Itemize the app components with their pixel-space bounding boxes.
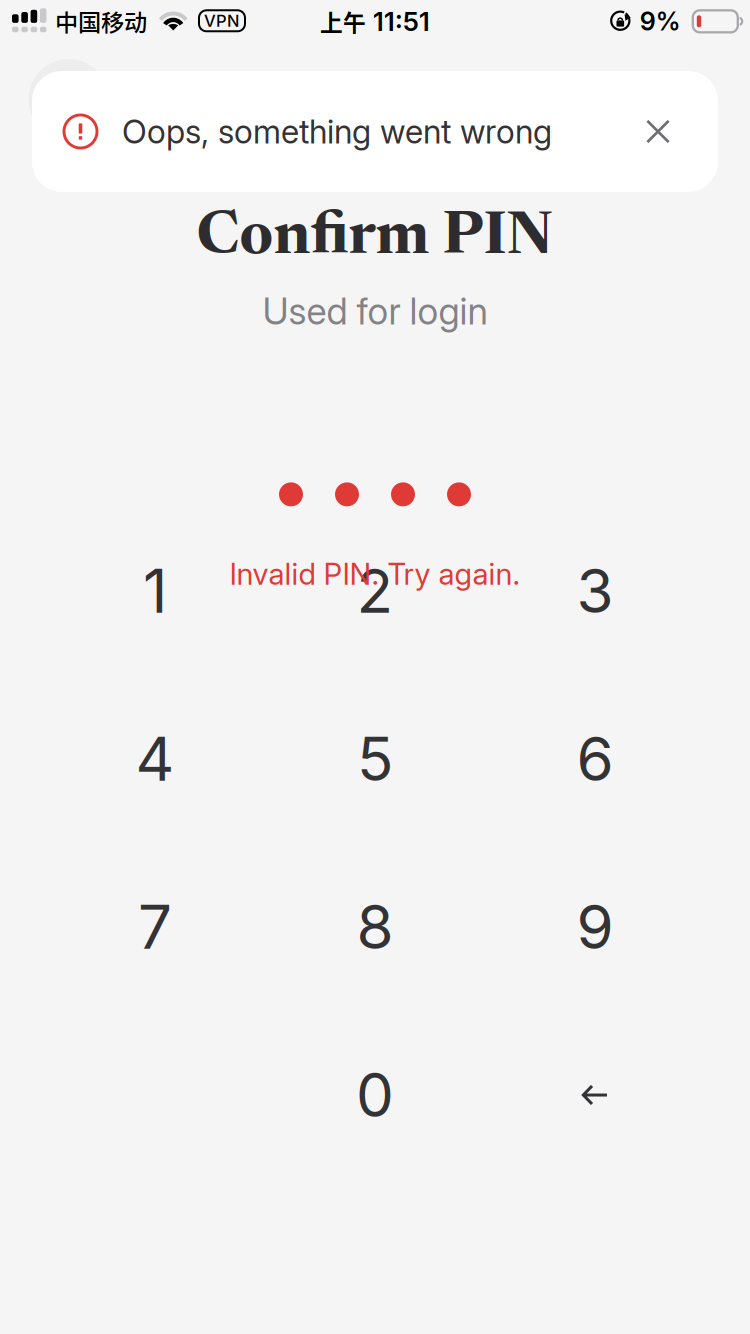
staticText: 3: [576, 555, 613, 627]
staticText: 0: [356, 1059, 394, 1131]
staticText: 9%: [640, 6, 681, 37]
staticText: 9: [576, 891, 613, 963]
staticText: 1: [143, 555, 167, 627]
staticText: 中国移动: [55, 4, 147, 38]
staticText: Invalid PIN. Try again.: [229, 556, 520, 592]
button[interactable]: 6: [485, 675, 705, 843]
button[interactable]: 4: [45, 675, 265, 843]
staticText: VPN: [204, 11, 240, 31]
button[interactable]: 5: [265, 675, 485, 843]
staticText: 2: [356, 555, 393, 627]
button[interactable]: 3: [485, 507, 705, 675]
staticText: Confirm PIN: [196, 209, 553, 269]
staticText: 7: [138, 891, 172, 963]
button[interactable]: 2: [265, 507, 485, 675]
staticText: 4: [135, 723, 174, 795]
staticText: 11:51: [373, 6, 430, 37]
staticText: 5: [357, 723, 393, 795]
staticText: 8: [356, 891, 393, 963]
button[interactable]: Dismiss: [626, 99, 690, 163]
staticText: Oops, something went wrong: [122, 112, 552, 151]
staticText: 6: [576, 723, 613, 795]
button[interactable]: 9: [485, 843, 705, 1011]
staticText: 上午: [320, 5, 366, 38]
button[interactable]: 7: [45, 843, 265, 1011]
button[interactable]: 0: [265, 1011, 485, 1179]
button[interactable]: Delete: [485, 1011, 705, 1179]
button[interactable]: 8: [265, 843, 485, 1011]
staticText: Used for login: [262, 289, 487, 333]
button[interactable]: 1: [45, 507, 265, 675]
